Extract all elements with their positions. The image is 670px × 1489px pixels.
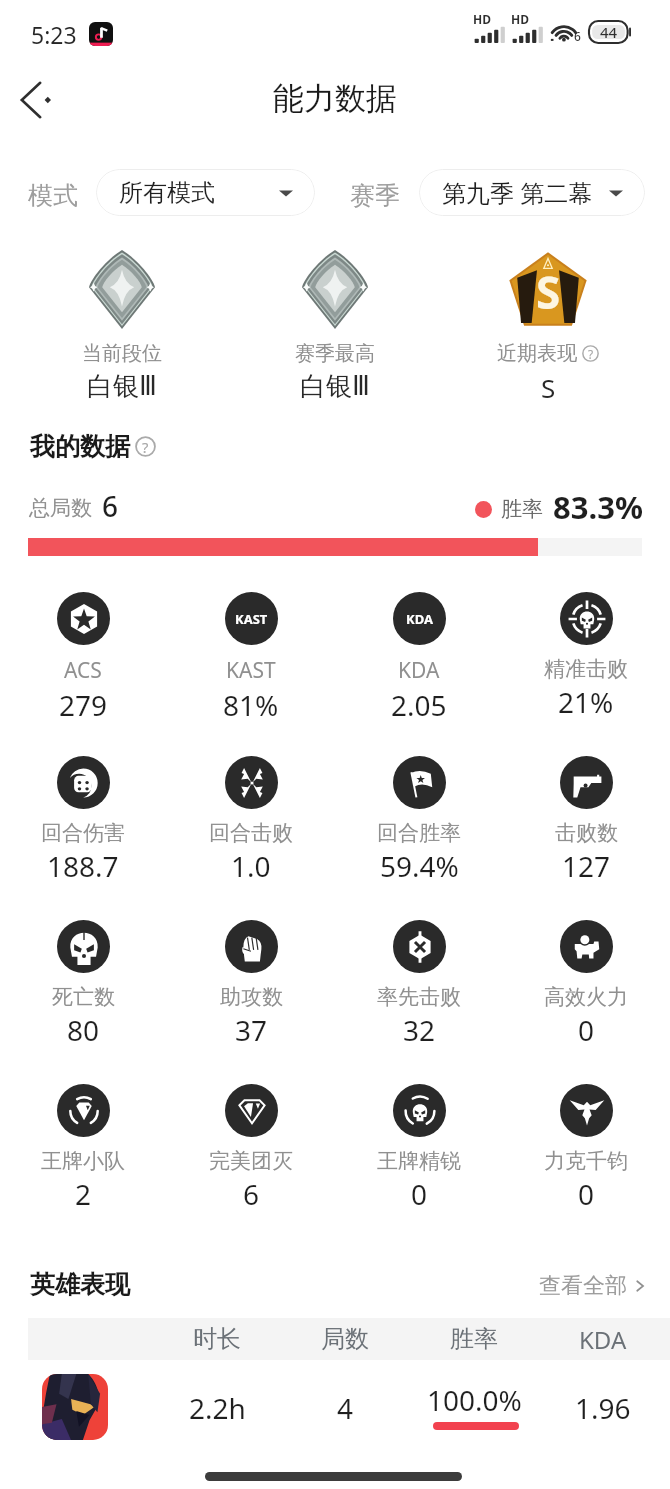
staticText: HD (473, 11, 491, 27)
staticText: 100.0% (427, 1381, 522, 1419)
staticText: 时长 (193, 1324, 241, 1354)
staticText: 第九季 第二幕 (442, 176, 593, 209)
staticText: 2 (75, 1175, 92, 1213)
staticText: 81% (223, 686, 279, 724)
staticText: 1.0 (231, 847, 271, 885)
button[interactable]: 回合胜率 (337, 756, 501, 896)
staticText: 当前段位 (82, 341, 162, 366)
staticText: S (541, 370, 556, 405)
staticText: 83.3% (553, 486, 643, 528)
staticText: 0 (578, 1011, 595, 1049)
button[interactable]: 高效火力 (504, 920, 668, 1060)
staticText: 局数 (321, 1324, 369, 1354)
staticText: 英雄表现 (30, 1269, 130, 1300)
staticText: HD (511, 11, 529, 27)
staticText: 6 (574, 28, 581, 44)
staticText: 127 (562, 847, 611, 885)
button[interactable]: 助攻数 (169, 920, 333, 1060)
staticText: ? (142, 437, 149, 457)
staticText: 59.4% (380, 847, 459, 885)
button[interactable]: 赛季最高 (255, 244, 415, 400)
staticText: 率先击败 (377, 984, 461, 1010)
staticText: 5:23 (31, 19, 77, 50)
staticText: 80 (67, 1011, 100, 1049)
staticText: 高效火力 (544, 984, 628, 1010)
staticText: 胜率 (450, 1324, 498, 1354)
staticText: 所有模式 (119, 178, 215, 208)
staticText: 力克千钧 (544, 1148, 628, 1174)
staticText: 我的数据 (30, 431, 130, 462)
staticText: KDA (406, 610, 433, 628)
staticText: 模式 (28, 180, 78, 211)
button[interactable]: 当前段位 (42, 244, 202, 400)
staticText: 赛季 (350, 180, 400, 211)
staticText: 0 (411, 1175, 428, 1213)
staticText: 总局数 (29, 495, 92, 521)
staticText: 白银Ⅲ (87, 370, 157, 403)
button[interactable]: 力克千钧 (504, 1084, 668, 1224)
button[interactable]: 完美团灭 (169, 1084, 333, 1224)
button[interactable]: 王牌小队 (1, 1084, 165, 1224)
button[interactable] (0, 1363, 670, 1453)
staticText: 白银Ⅲ (300, 370, 370, 403)
staticText: 回合击败 (209, 820, 293, 846)
staticText: 精准击败 (544, 656, 628, 682)
staticText: KDA (579, 1323, 627, 1356)
button[interactable]: 精准击败 (504, 592, 668, 732)
staticText: KAST (235, 610, 268, 628)
staticText: 32 (403, 1011, 436, 1049)
staticText: 2.05 (391, 686, 447, 724)
button[interactable]: 查看全部 (539, 1272, 647, 1300)
button[interactable]: 率先击败 (337, 920, 501, 1060)
staticText: ? (588, 346, 594, 362)
button[interactable]: 王牌精锐 (337, 1084, 501, 1224)
staticText: 2.2h (189, 1389, 246, 1427)
button[interactable]: 回合击败 (169, 756, 333, 896)
staticText: 击败数 (555, 820, 618, 846)
staticText: 助攻数 (220, 984, 283, 1010)
button[interactable]: ACS (1, 592, 165, 732)
staticText: 近期表现 (497, 341, 577, 366)
staticText: S (536, 262, 561, 322)
staticText: 王牌精锐 (377, 1148, 461, 1174)
staticText: 胜率 (501, 496, 543, 522)
staticText: 279 (59, 686, 108, 724)
staticText: 王牌小队 (41, 1148, 125, 1174)
staticText: 查看全部 (539, 1272, 627, 1300)
staticText: 44 (600, 22, 618, 42)
staticText: 6 (102, 487, 119, 525)
staticText: 0 (578, 1175, 595, 1213)
staticText: 6 (243, 1175, 260, 1213)
button[interactable]: Back (8, 71, 66, 129)
staticText: KDA (398, 656, 440, 685)
staticText: 赛季最高 (295, 341, 375, 366)
button[interactable]: KDA (337, 592, 501, 732)
staticText: 完美团灭 (209, 1148, 293, 1174)
staticText: 1.96 (575, 1389, 631, 1427)
button[interactable]: 死亡数 (1, 920, 165, 1060)
button[interactable]: 回合伤害 (1, 756, 165, 896)
staticText: 死亡数 (52, 984, 115, 1010)
staticText: 回合胜率 (377, 820, 461, 846)
staticText: 能力数据 (273, 79, 397, 118)
button[interactable]: KAST (169, 592, 333, 732)
staticText: 21% (558, 683, 614, 721)
staticText: ACS (64, 656, 102, 685)
button[interactable]: 击败数 (504, 756, 668, 896)
button[interactable]: 第九季 第二幕 (419, 169, 645, 216)
button[interactable]: S (468, 244, 628, 400)
staticText: 4 (337, 1389, 354, 1427)
staticText: KAST (226, 656, 276, 685)
staticText: 回合伤害 (41, 820, 125, 846)
staticText: 37 (235, 1011, 268, 1049)
staticText: 188.7 (47, 847, 119, 885)
button[interactable]: 所有模式 (96, 169, 315, 216)
